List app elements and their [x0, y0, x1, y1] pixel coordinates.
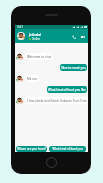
- staticText: Online: [32, 37, 41, 41]
- button[interactable]: I love Jalebi and Rabdi Gokaran Yum Yum: [26, 97, 88, 104]
- button[interactable]: Me too: [26, 75, 39, 82]
- button[interactable]: Welcome to chat: [26, 53, 53, 60]
- button[interactable]: Jethalal: [15, 29, 88, 43]
- staticText: What kind of food you like: [48, 88, 86, 92]
- staticText: Me too: [27, 77, 38, 81]
- staticText: Jethalal: [29, 32, 42, 36]
- staticText: Welcome to chat: [27, 55, 52, 59]
- button[interactable]: Where are you from?: [16, 146, 47, 152]
- button[interactable]: What kind of food you like: [47, 86, 87, 93]
- staticText: Where are you from?: [17, 147, 46, 151]
- button[interactable]: Nice to meet you: [60, 64, 87, 71]
- staticText: 9:41: [17, 25, 23, 29]
- staticText: Nice to meet you: [61, 66, 86, 70]
- staticText: I love Jalebi and Rabdi Gokaran Yum Yum: [27, 99, 87, 103]
- button[interactable]: What kind of food you like?: [49, 146, 86, 152]
- button[interactable]: Voice call: [71, 32, 77, 41]
- button[interactable]: Video call: [79, 32, 86, 41]
- staticText: What kind of food you like?: [50, 147, 85, 151]
